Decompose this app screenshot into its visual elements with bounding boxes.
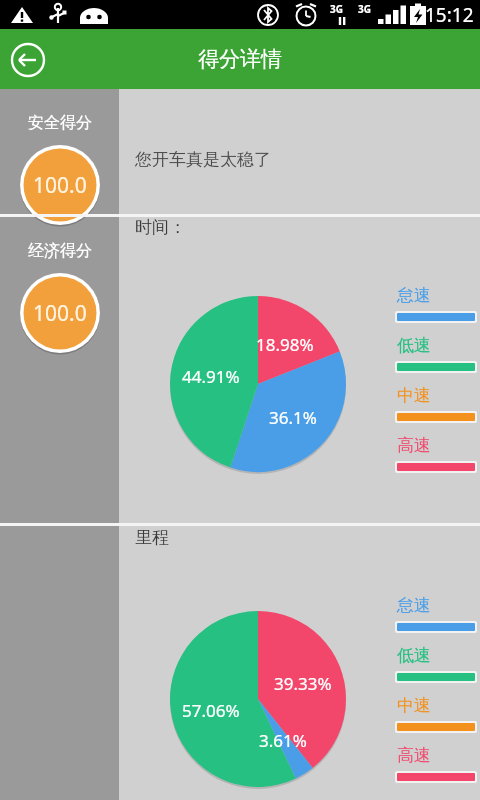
staticText: 高速 [397,745,431,766]
staticText: 3G [358,2,371,16]
staticText: 里程 [135,527,169,548]
staticText: 39.33% [274,672,332,695]
staticText: 3.61% [259,729,307,752]
staticText: 安全得分 [28,113,92,133]
staticText: 44.91% [182,365,240,388]
staticText: 3G [330,2,343,16]
staticText: 您开车真是太稳了 [135,149,271,170]
staticText: 低速 [397,335,431,356]
staticText: 18.98% [256,333,314,356]
button[interactable]: Back [10,42,46,78]
button[interactable]: 中速 [395,695,480,741]
button[interactable]: 中速 [395,385,480,431]
staticText: 57.06% [182,699,240,722]
staticText: 中速 [397,385,431,406]
button[interactable]: 经济得分 [0,231,119,357]
staticText: 100.0 [33,299,87,328]
staticText: 经济得分 [28,241,92,261]
staticText: 15:12 [425,2,474,28]
staticText: 时间： [135,217,186,238]
staticText: 高速 [397,435,431,456]
button[interactable]: 18.98% [170,296,346,472]
staticText: 怠速 [397,595,431,616]
button[interactable]: 您开车真是太稳了 [135,149,271,170]
staticText: 怠速 [397,285,431,306]
button[interactable]: 高速 [395,745,480,791]
staticText: 低速 [397,645,431,666]
staticText: 中速 [397,695,431,716]
button[interactable]: 低速 [395,335,480,381]
button[interactable]: 安全得分 [0,103,119,229]
button[interactable]: 怠速 [395,285,480,331]
staticText: 100.0 [33,171,87,200]
button[interactable]: 怠速 [395,595,480,641]
button[interactable]: 高速 [395,435,480,481]
button[interactable]: 低速 [395,645,480,691]
staticText: 得分详情 [198,46,282,72]
staticText: 36.1% [269,406,317,429]
button[interactable]: 39.33% [170,611,346,787]
